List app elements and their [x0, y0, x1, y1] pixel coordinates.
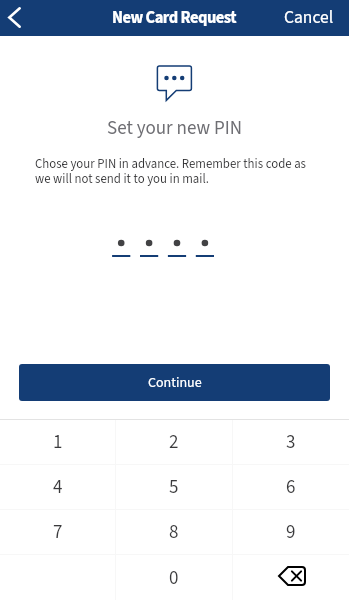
- button[interactable]: Delete: [233, 555, 349, 600]
- button[interactable]: 6: [233, 465, 349, 509]
- button[interactable]: Cancel: [284, 6, 334, 31]
- staticText: 1: [53, 429, 63, 456]
- staticText: 8: [169, 519, 179, 546]
- staticText: Set your new PIN: [0, 115, 349, 142]
- staticText: 7: [53, 519, 63, 546]
- button[interactable]: Back: [0, 1, 34, 35]
- button[interactable]: 7: [0, 510, 115, 554]
- staticText: 2: [169, 429, 179, 456]
- staticText: 4: [53, 474, 63, 501]
- staticText: New Card Request: [112, 6, 237, 29]
- staticText: Continue: [148, 373, 202, 393]
- button[interactable]: Continue: [19, 364, 330, 401]
- staticText: 3: [286, 429, 296, 456]
- button[interactable]: 9: [233, 510, 349, 554]
- button[interactable]: 0: [116, 555, 232, 600]
- staticText: 6: [286, 474, 296, 501]
- button[interactable]: 2: [116, 420, 232, 464]
- button[interactable]: 5: [116, 465, 232, 509]
- button[interactable]: 1: [0, 420, 115, 464]
- staticText: Cancel: [284, 5, 334, 30]
- staticText: 5: [169, 474, 179, 501]
- button[interactable]: 8: [116, 510, 232, 554]
- staticText: 0: [169, 565, 179, 592]
- button[interactable]: 4: [0, 465, 115, 509]
- staticText: 9: [286, 519, 296, 546]
- button[interactable]: 3: [233, 420, 349, 464]
- staticText: Chose your PIN in advance. Remember this…: [35, 155, 323, 188]
